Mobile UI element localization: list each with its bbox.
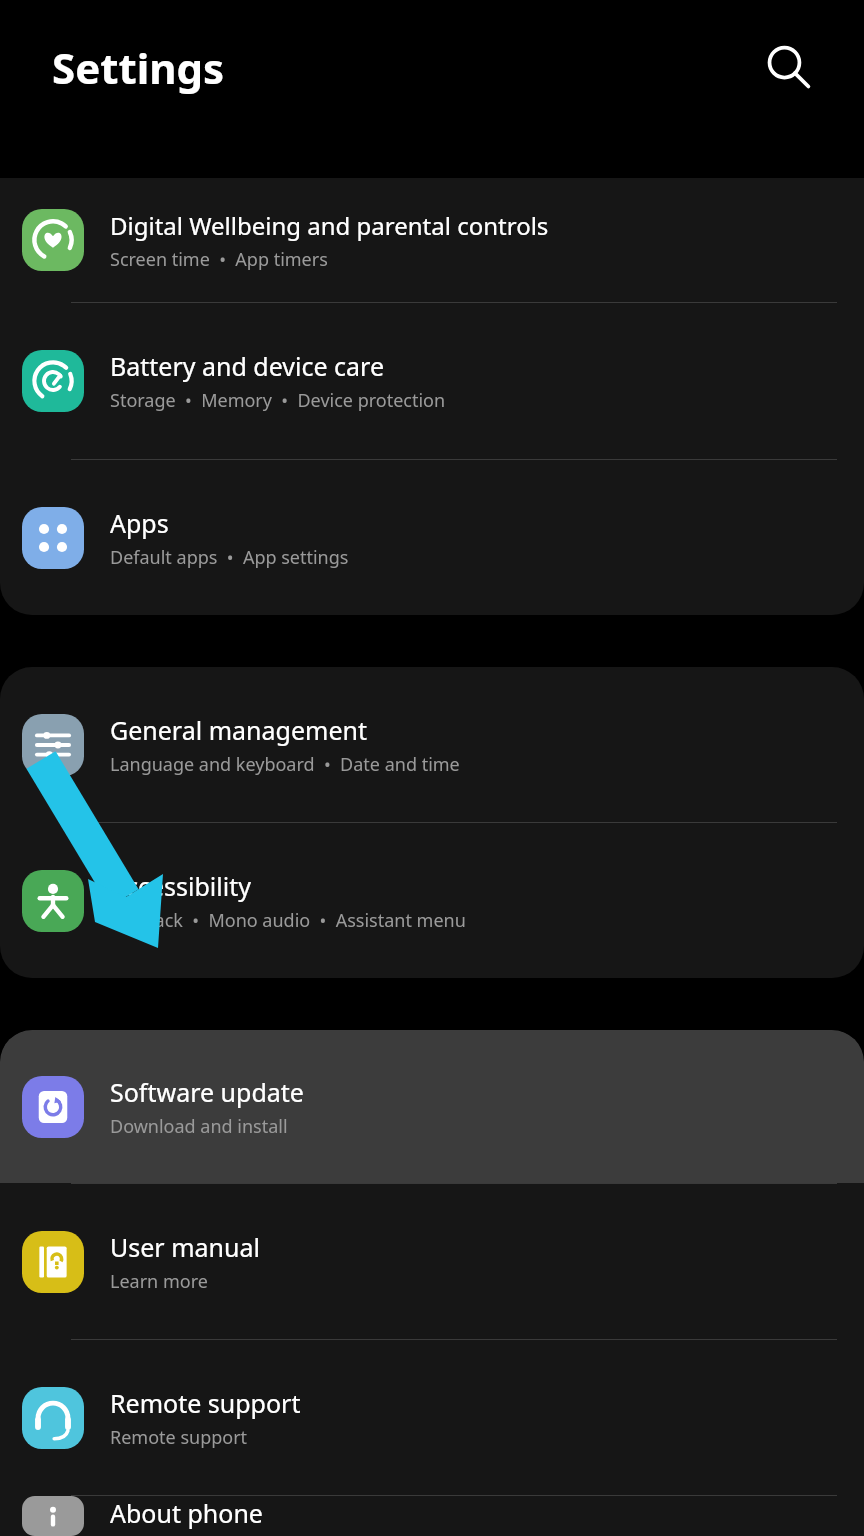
button[interactable]: User manual	[0, 1184, 864, 1339]
staticText: Remote support	[110, 1425, 248, 1450]
staticText: Battery and device care	[110, 349, 385, 383]
button[interactable]: Software update	[0, 1030, 864, 1183]
staticText: Download and install	[110, 1114, 288, 1139]
staticText: Software update	[110, 1075, 304, 1109]
button[interactable]: Remote support	[0, 1340, 864, 1495]
staticText: Digital Wellbeing and parental controls	[110, 209, 549, 242]
staticText: General management	[110, 713, 367, 747]
staticText: Storage • Memory • Device protection	[110, 388, 446, 413]
staticText: Accessibility	[110, 869, 251, 903]
staticText: Settings	[52, 39, 225, 96]
button[interactable]: About phone	[0, 1496, 864, 1536]
button[interactable]: General management	[0, 667, 864, 822]
button[interactable]: Battery and device care	[0, 303, 864, 459]
staticText: Language and keyboard • Date and time	[110, 752, 460, 777]
button[interactable]: Search	[752, 31, 824, 103]
button[interactable]: Accessibility	[0, 823, 864, 978]
staticText: Screen time • App timers	[110, 247, 328, 272]
staticText: TalkBack • Mono audio • Assistant menu	[110, 908, 466, 933]
staticText: About phone	[110, 1496, 263, 1530]
button[interactable]: Digital Wellbeing and parental controls	[0, 178, 864, 302]
staticText: Learn more	[110, 1269, 208, 1294]
button[interactable]: Apps	[0, 460, 864, 615]
staticText: Remote support	[110, 1386, 301, 1420]
staticText: Default apps • App settings	[110, 545, 349, 570]
staticText: User manual	[110, 1230, 260, 1264]
staticText: Apps	[110, 506, 169, 540]
